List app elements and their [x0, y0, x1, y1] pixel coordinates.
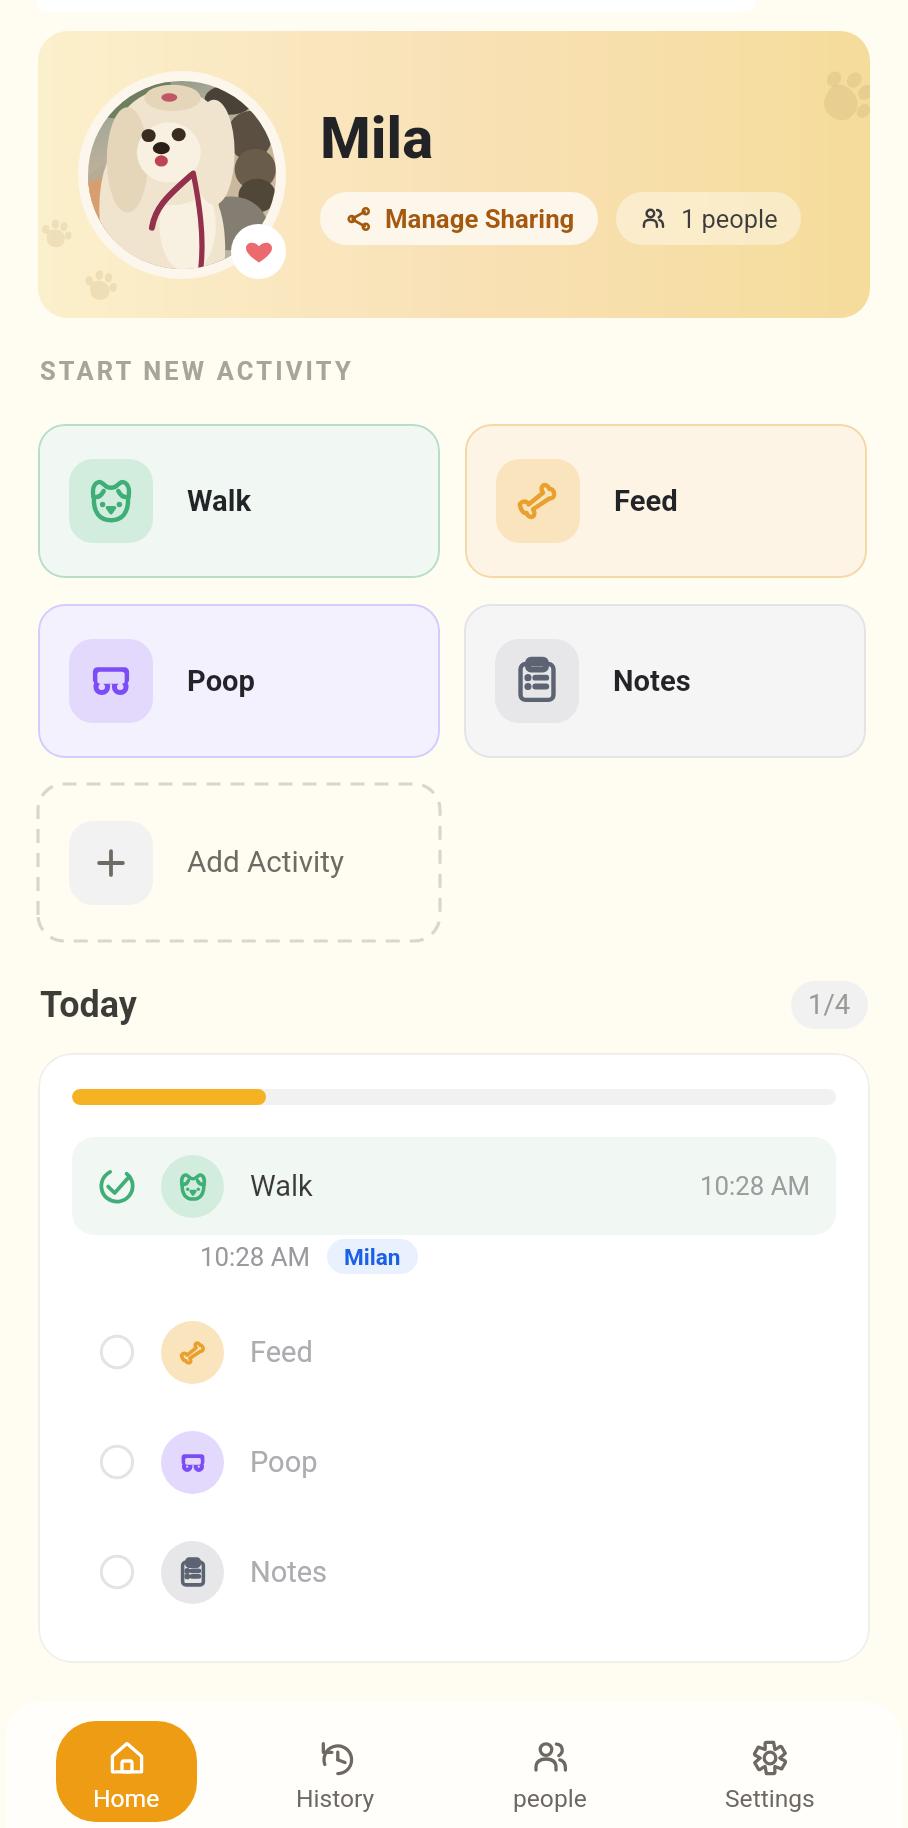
staticText: Notes	[250, 1555, 328, 1589]
staticText: History	[296, 1784, 375, 1813]
button[interactable]: Walk	[38, 424, 440, 578]
button[interactable]: Settings	[699, 1721, 840, 1822]
button[interactable]: 1 people	[616, 192, 801, 245]
staticText: Walk	[187, 484, 252, 518]
staticText: Poop	[250, 1445, 318, 1479]
button[interactable]: Poop	[72, 1413, 836, 1511]
button[interactable]: Add Activity	[38, 784, 440, 941]
staticText: Add Activity	[187, 845, 344, 880]
button[interactable]: Home	[56, 1721, 197, 1822]
staticText: START NEW ACTIVITY	[40, 356, 354, 386]
staticText: Feed	[614, 484, 678, 518]
staticText: Today	[40, 984, 137, 1026]
button[interactable]: History	[265, 1721, 406, 1822]
button[interactable]: Mila	[38, 31, 870, 318]
button[interactable]: Walk	[72, 1137, 836, 1235]
staticText: Mila	[320, 104, 434, 172]
staticText: 1/4	[808, 989, 851, 1021]
staticText: Walk	[250, 1169, 313, 1203]
staticText: Manage Sharing	[385, 204, 575, 234]
button[interactable]: Notes	[464, 604, 866, 758]
staticText: Settings	[725, 1784, 815, 1813]
staticText: Notes	[613, 664, 691, 698]
staticText: 1 people	[681, 204, 778, 234]
staticText: 10:28 AM	[700, 1171, 810, 1201]
button[interactable]: people	[479, 1721, 620, 1822]
staticText: 10:28 AM	[200, 1242, 310, 1272]
staticText: Home	[93, 1784, 160, 1813]
button[interactable]: Poop	[38, 604, 440, 758]
staticText: people	[513, 1784, 587, 1813]
staticText: Poop	[187, 664, 255, 698]
button[interactable]: Manage Sharing	[320, 192, 598, 245]
staticText: Milan	[344, 1244, 401, 1270]
button[interactable]: Feed	[465, 424, 867, 578]
button[interactable]: Feed	[72, 1303, 836, 1401]
staticText: Feed	[250, 1335, 313, 1369]
button[interactable]: Notes	[72, 1523, 836, 1621]
